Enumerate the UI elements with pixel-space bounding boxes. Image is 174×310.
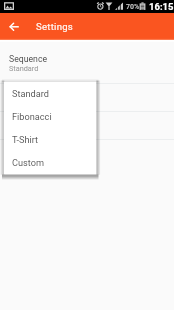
button[interactable] bbox=[0, 112, 174, 139]
button[interactable]: T-Shirt bbox=[4, 128, 96, 151]
button[interactable]: Back bbox=[2, 15, 26, 39]
staticText: Standard bbox=[9, 64, 39, 73]
staticText: Sequence bbox=[9, 54, 48, 64]
staticText: 16:15 bbox=[149, 1, 174, 12]
button[interactable]: Sequence bbox=[0, 42, 174, 83]
button[interactable]: Fibonacci bbox=[4, 105, 96, 128]
staticText: Custom bbox=[12, 157, 44, 168]
staticText: T-Shirt bbox=[12, 134, 39, 145]
staticText: Fibonacci bbox=[12, 111, 52, 122]
staticText: Standard bbox=[12, 88, 49, 99]
button[interactable] bbox=[0, 84, 174, 111]
staticText: 70% bbox=[126, 3, 140, 11]
button[interactable]: Custom bbox=[4, 151, 96, 174]
staticText: Settings bbox=[36, 21, 74, 32]
button[interactable]: Standard bbox=[4, 82, 96, 105]
